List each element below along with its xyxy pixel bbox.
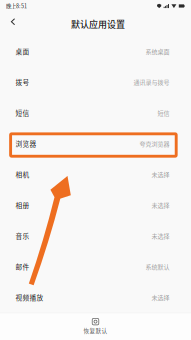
staticText: 系统桌面 <box>145 47 169 56</box>
button[interactable]: 短信 <box>0 97 191 128</box>
button[interactable]: 恢复默认 <box>0 313 191 340</box>
button[interactable]: 视频播放 <box>0 282 191 313</box>
staticText: 未选择 <box>151 170 169 179</box>
staticText: 夸克浏览器 <box>139 139 169 148</box>
staticText: 未选择 <box>151 293 169 302</box>
staticText: 恢复默认 <box>83 326 107 335</box>
staticText: 浏览器 <box>15 139 36 148</box>
staticText: 短信 <box>157 108 169 117</box>
staticText: 相册 <box>15 200 29 210</box>
staticText: 默认应用设置 <box>71 17 125 30</box>
button[interactable]: 相册 <box>0 190 191 220</box>
staticText: 视频播放 <box>15 292 43 302</box>
staticText: 未选择 <box>151 231 169 240</box>
button[interactable]: 音乐 <box>0 220 191 251</box>
staticText: 通讯录与拨号 <box>133 78 169 86</box>
button[interactable]: 返回 <box>4 15 22 33</box>
staticText: 相机 <box>15 169 29 179</box>
staticText: 晚上8:51 <box>6 2 27 10</box>
button[interactable]: 桌面 <box>0 36 191 67</box>
staticText: 音乐 <box>15 231 29 241</box>
staticText: 系统默认 <box>145 262 169 271</box>
button[interactable]: 浏览器 <box>0 128 191 159</box>
staticText: 未选择 <box>151 201 169 209</box>
button[interactable]: 拨号 <box>0 67 191 97</box>
button[interactable]: 相机 <box>0 159 191 190</box>
button[interactable]: 邮件 <box>0 251 191 282</box>
staticText: 短信 <box>15 108 29 118</box>
staticText: 桌面 <box>15 46 29 56</box>
staticText: 拨号 <box>15 77 29 87</box>
staticText: 邮件 <box>15 262 29 271</box>
